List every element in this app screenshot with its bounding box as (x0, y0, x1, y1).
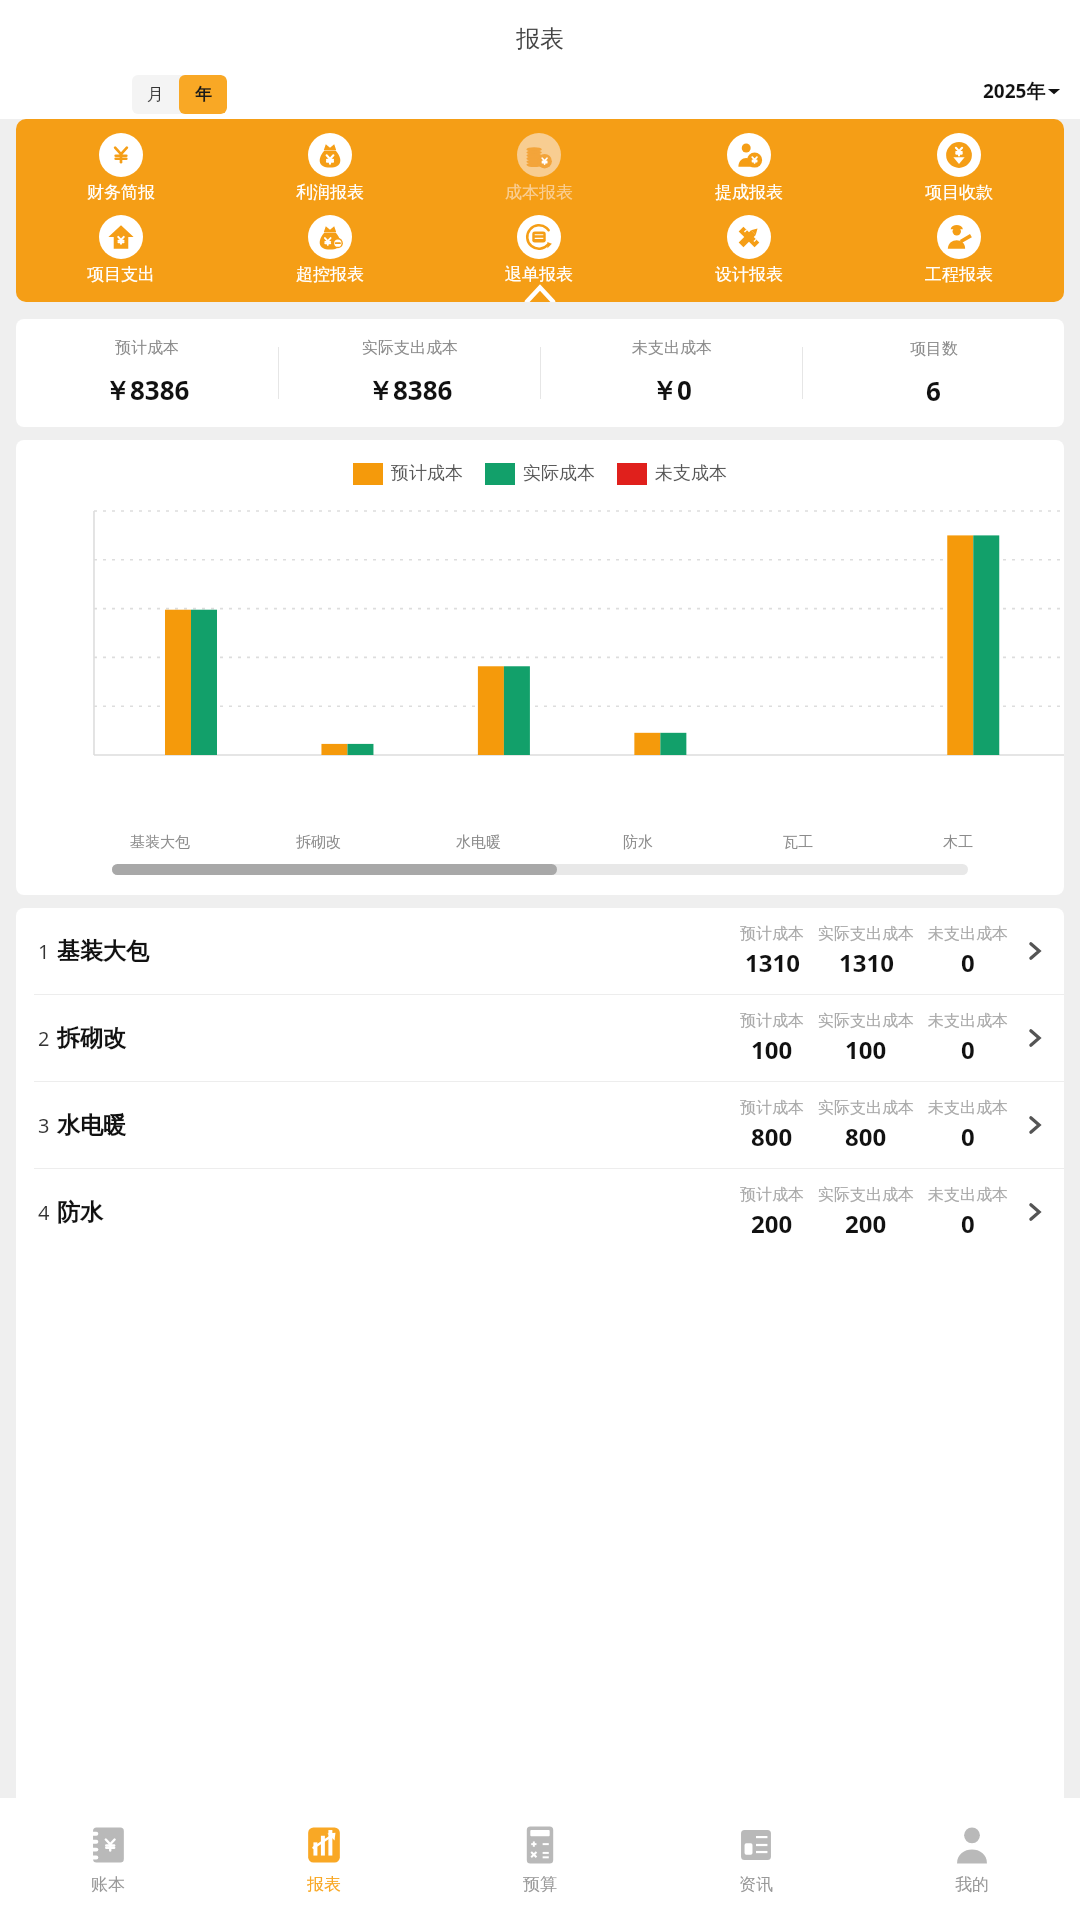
other: 详情 (1022, 1025, 1048, 1051)
button[interactable]: 报表 (216, 1798, 432, 1920)
button[interactable]: 4 (16, 1169, 1064, 1255)
other: 详情 (1022, 1199, 1048, 1225)
staticText: 年 (195, 84, 212, 105)
staticText: 6 (926, 373, 941, 408)
staticText: 工程报表 (925, 264, 993, 285)
staticText: 项目支出 (87, 264, 155, 285)
staticText: 防水 (57, 1198, 103, 1227)
button[interactable]: 成本报表 (434, 133, 644, 203)
staticText: 1310 (839, 946, 894, 979)
staticText: 未支出成本 (928, 1098, 1008, 1118)
staticText: 设计报表 (715, 264, 783, 285)
staticText: 未支出成本 (632, 338, 712, 358)
staticText: 实际支出成本 (818, 924, 914, 944)
staticText: 超控报表 (296, 264, 364, 285)
staticText: 水电暖 (456, 833, 501, 852)
button[interactable]: 设计报表 (644, 215, 854, 285)
staticText: 100 (845, 1033, 887, 1066)
staticText: 成本报表 (505, 182, 573, 203)
button[interactable]: 账本 (0, 1798, 216, 1920)
staticText: 水电暖 (57, 1111, 126, 1140)
button[interactable]: 利润报表 (225, 133, 434, 203)
staticText: 1 (38, 938, 50, 965)
staticText: ￥8386 (367, 372, 453, 408)
staticText: 800 (751, 1120, 793, 1153)
staticText: 报表 (307, 1874, 341, 1895)
staticText: 2 (38, 1025, 50, 1052)
staticText: 预计成本 (740, 1011, 804, 1031)
staticText: 预计成本 (740, 924, 804, 944)
staticText: 基装大包 (57, 937, 149, 966)
staticText: 0 (961, 1033, 975, 1066)
staticText: 200 (845, 1207, 887, 1240)
staticText: 未支出成本 (928, 924, 1008, 944)
staticText: 实际支出成本 (362, 338, 458, 358)
staticText: 0 (961, 1120, 975, 1153)
staticText: 基装大包 (130, 833, 190, 852)
staticText: 木工 (943, 833, 973, 852)
button[interactable]: 月 (132, 75, 179, 114)
staticText: 预计成本 (740, 1185, 804, 1205)
staticText: 提成报表 (715, 182, 783, 203)
button[interactable]: 资讯 (648, 1798, 864, 1920)
staticText: 我的 (955, 1874, 989, 1895)
staticText: 项目收款 (925, 182, 993, 203)
staticText: 利润报表 (296, 182, 364, 203)
button[interactable]: 1 (16, 908, 1064, 994)
staticText: 报表 (516, 24, 564, 54)
button[interactable]: 工程报表 (854, 215, 1064, 285)
staticText: 0 (961, 946, 975, 979)
staticText: 800 (845, 1120, 887, 1153)
staticText: 月 (147, 84, 164, 105)
button[interactable]: 2 (16, 995, 1064, 1081)
button[interactable]: 预算 (432, 1798, 648, 1920)
button[interactable]: 超控报表 (225, 215, 434, 285)
staticText: 实际成本 (523, 462, 595, 485)
staticText: 瓦工 (783, 833, 813, 852)
staticText: 2025年 (983, 78, 1046, 104)
staticText: 实际支出成本 (818, 1011, 914, 1031)
staticText: 拆砌改 (296, 833, 341, 852)
staticText: 0 (961, 1207, 975, 1240)
staticText: 4 (38, 1199, 50, 1226)
staticText: 防水 (623, 833, 653, 852)
staticText: 预计成本 (391, 462, 463, 485)
other: 详情 (1022, 938, 1048, 964)
button[interactable]: 项目收款 (854, 133, 1064, 203)
button[interactable]: 财务简报 (16, 133, 225, 203)
staticText: 100 (751, 1033, 793, 1066)
staticText: 1310 (745, 946, 800, 979)
staticText: 未支出成本 (928, 1185, 1008, 1205)
staticText: 3 (38, 1112, 50, 1139)
staticText: 退单报表 (505, 264, 573, 285)
button[interactable]: 项目支出 (16, 215, 225, 285)
staticText: 实际支出成本 (818, 1098, 914, 1118)
staticText: 项目数 (910, 339, 958, 359)
staticText: 资讯 (739, 1874, 773, 1895)
staticText: 拆砌改 (57, 1024, 126, 1053)
button[interactable]: 预计成本 (16, 319, 1064, 427)
button[interactable]: 我的 (864, 1798, 1080, 1920)
staticText: 预计成本 (115, 338, 179, 358)
staticText: 未支出成本 (928, 1011, 1008, 1031)
button[interactable]: 年 (179, 75, 227, 114)
staticText: 实际支出成本 (818, 1185, 914, 1205)
staticText: 预计成本 (740, 1098, 804, 1118)
staticText: 200 (751, 1207, 793, 1240)
button[interactable]: 提成报表 (644, 133, 854, 203)
button[interactable]: 退单报表 (434, 215, 644, 285)
staticText: 账本 (91, 1874, 125, 1895)
staticText: ￥8386 (104, 372, 190, 408)
staticText: 未支成本 (655, 462, 727, 485)
staticText: 预算 (523, 1874, 557, 1895)
other: 详情 (1022, 1112, 1048, 1138)
button[interactable]: 2025年 (983, 78, 1062, 104)
staticText: 财务简报 (87, 182, 155, 203)
staticText: ￥0 (651, 372, 692, 408)
button[interactable]: 3 (16, 1082, 1064, 1168)
